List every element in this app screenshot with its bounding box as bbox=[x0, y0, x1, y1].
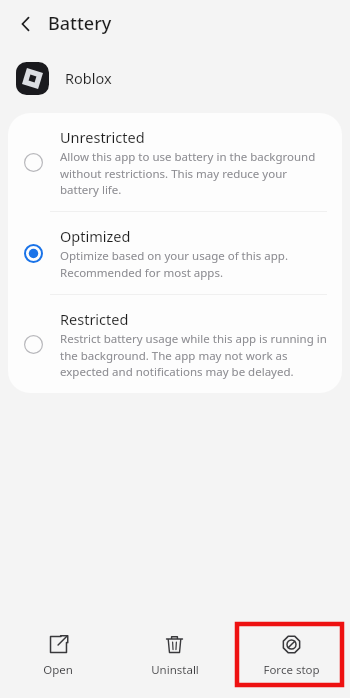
button[interactable]: Optimized bbox=[8, 212, 342, 294]
staticText: Roblox bbox=[65, 68, 112, 88]
staticText: Uninstall bbox=[151, 662, 199, 678]
button[interactable]: Back bbox=[10, 8, 42, 40]
button[interactable]: Open bbox=[0, 626, 116, 686]
button[interactable]: Roblox bbox=[0, 47, 350, 109]
staticText: Optimized bbox=[60, 226, 131, 246]
staticText: Restricted bbox=[60, 309, 129, 329]
staticText: Force stop bbox=[263, 662, 320, 678]
staticText: Restrict battery usage while this app is… bbox=[60, 331, 328, 379]
staticText: Unrestricted bbox=[60, 127, 145, 147]
staticText: Allow this app to use battery in the bac… bbox=[60, 149, 328, 197]
button[interactable]: Uninstall bbox=[116, 626, 233, 686]
button[interactable]: Unrestricted bbox=[8, 113, 342, 211]
button[interactable]: Force stop bbox=[233, 626, 350, 686]
staticText: Open bbox=[43, 662, 73, 678]
button[interactable]: Restricted bbox=[8, 295, 342, 393]
staticText: Battery bbox=[48, 11, 112, 36]
staticText: Optimize based on your usage of this app… bbox=[60, 248, 328, 280]
